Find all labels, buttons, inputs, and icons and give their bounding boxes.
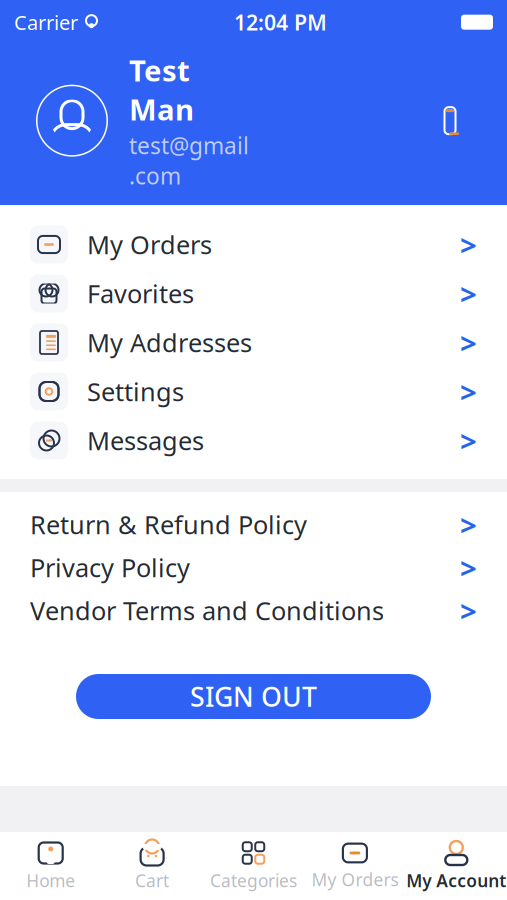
staticText: Messages — [87, 424, 204, 457]
staticText: test@gmail.com — [129, 130, 249, 191]
staticText: Return & Refund Policy — [30, 508, 307, 541]
staticText: SIGN OUT — [190, 679, 317, 714]
staticText: 12:04 PM — [234, 8, 327, 36]
button[interactable]: Home — [0, 836, 101, 896]
button[interactable]: Edit profile — [429, 98, 471, 144]
button[interactable]: My Addresses — [0, 318, 507, 367]
staticText: > — [460, 548, 477, 587]
staticText: Favorites — [87, 277, 194, 310]
staticText: > — [460, 323, 477, 362]
staticText: My Orders — [87, 228, 212, 261]
staticText: > — [460, 505, 477, 544]
staticText: Carrier — [14, 9, 78, 35]
staticText: Categories — [210, 869, 297, 892]
staticText: Cart — [135, 869, 169, 892]
button[interactable]: Return & Refund Policy — [0, 503, 507, 546]
staticText: > — [460, 421, 477, 460]
staticText: Test Man — [129, 51, 194, 128]
staticText: My Account — [406, 869, 506, 892]
button[interactable]: Privacy Policy — [0, 546, 507, 589]
button[interactable]: Cart — [101, 836, 203, 896]
staticText: Privacy Policy — [30, 551, 190, 584]
button[interactable]: Settings — [0, 367, 507, 416]
button[interactable]: SIGN OUT — [76, 674, 431, 719]
staticText: Settings — [87, 375, 184, 408]
button[interactable]: Categories — [203, 836, 304, 896]
staticText: My Orders — [311, 868, 398, 891]
button[interactable]: Messages — [0, 416, 507, 465]
button[interactable]: Favorites — [0, 269, 507, 318]
staticText: > — [460, 274, 477, 313]
staticText: Home — [26, 869, 75, 892]
staticText: > — [460, 372, 477, 411]
staticText: > — [460, 591, 477, 630]
button[interactable]: Vendor Terms and Conditions — [0, 589, 507, 632]
staticText: > — [460, 225, 477, 264]
button[interactable]: My Orders — [304, 836, 406, 896]
button[interactable]: My Account — [406, 836, 507, 896]
staticText: My Addresses — [87, 326, 252, 359]
staticText: Vendor Terms and Conditions — [30, 594, 384, 627]
button[interactable]: My Orders — [0, 220, 507, 269]
